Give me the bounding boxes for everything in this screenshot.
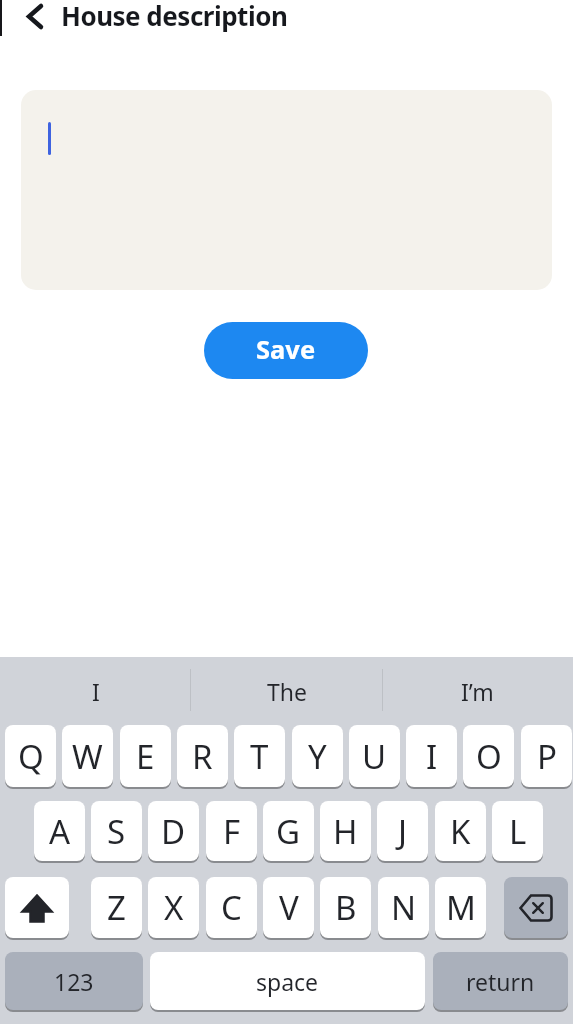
button[interactable]: I [0, 657, 191, 725]
button[interactable]: V [263, 877, 314, 938]
button[interactable]: return [433, 952, 568, 1010]
button[interactable]: F [206, 801, 257, 861]
button[interactable]: O [463, 725, 514, 787]
button[interactable] [14, 0, 56, 34]
staticText: K [450, 809, 471, 854]
button[interactable]: X [148, 877, 199, 938]
button[interactable] [5, 877, 69, 938]
button[interactable]: E [120, 725, 171, 787]
button[interactable]: C [206, 877, 257, 938]
staticText: return [466, 966, 535, 997]
button[interactable]: M [435, 877, 486, 938]
staticText: B [335, 885, 357, 930]
button[interactable]: D [148, 801, 199, 861]
staticText: T [250, 734, 269, 779]
button[interactable]: L [492, 801, 543, 861]
staticText: space [256, 966, 319, 997]
staticText: 123 [54, 966, 94, 997]
button[interactable]: B [320, 877, 371, 938]
button[interactable]: U [349, 725, 400, 787]
staticText: U [362, 734, 387, 779]
button[interactable]: T [234, 725, 285, 787]
staticText: G [276, 809, 301, 854]
staticText: Q [18, 734, 44, 779]
button[interactable]: Save [204, 322, 368, 379]
button[interactable]: I [406, 725, 457, 787]
staticText: S [107, 809, 126, 854]
staticText: X [164, 885, 184, 930]
button[interactable]: J [377, 801, 428, 861]
staticText: W [72, 734, 103, 779]
staticText: I [426, 734, 438, 779]
staticText: V [279, 885, 299, 930]
button[interactable] [21, 90, 552, 290]
button[interactable]: space [150, 952, 425, 1010]
button[interactable]: P [521, 725, 572, 787]
staticText: A [49, 809, 71, 854]
button[interactable]: N [378, 877, 429, 938]
staticText: I’m [461, 676, 494, 707]
staticText: I [92, 676, 100, 707]
staticText: C [221, 885, 242, 930]
staticText: E [136, 734, 155, 779]
staticText: House description [61, 0, 288, 33]
button[interactable]: I’m [382, 657, 573, 725]
button[interactable]: Q [5, 725, 56, 787]
staticText: F [223, 809, 241, 854]
staticText: L [509, 809, 527, 854]
button[interactable]: A [34, 801, 85, 861]
button[interactable]: 123 [5, 952, 143, 1010]
staticText: The [267, 676, 307, 707]
button[interactable]: K [435, 801, 486, 861]
button[interactable]: H [320, 801, 371, 861]
button[interactable]: S [91, 801, 142, 861]
staticText: D [161, 809, 186, 854]
staticText: P [537, 734, 557, 779]
button[interactable]: G [263, 801, 314, 861]
button[interactable]: Y [292, 725, 343, 787]
staticText: Save [256, 332, 316, 367]
staticText: N [391, 885, 417, 930]
staticText: J [398, 809, 408, 854]
button[interactable]: R [177, 725, 228, 787]
button[interactable] [504, 877, 568, 938]
staticText: Y [308, 734, 327, 779]
button[interactable]: W [62, 725, 113, 787]
staticText: R [192, 734, 213, 779]
button[interactable]: Z [91, 877, 142, 938]
staticText: M [446, 885, 476, 930]
staticText: H [333, 809, 358, 854]
staticText: Z [107, 885, 126, 930]
button[interactable]: The [191, 657, 382, 725]
staticText: O [476, 734, 502, 779]
